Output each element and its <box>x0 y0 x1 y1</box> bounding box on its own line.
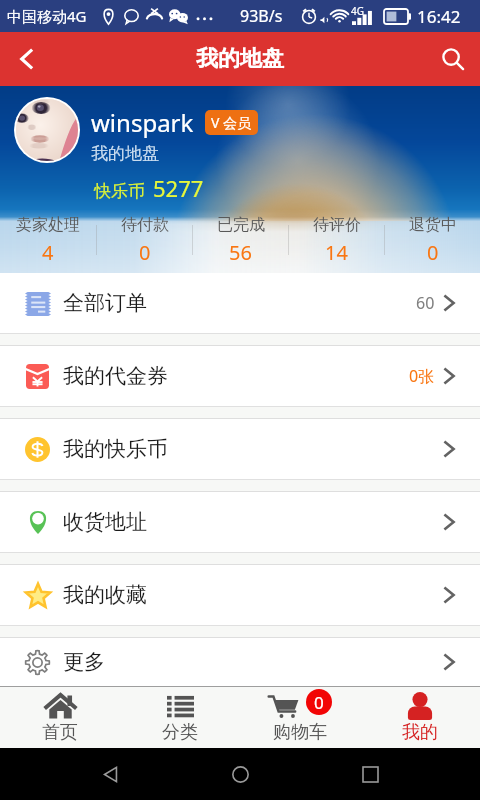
staticText: 分类 <box>162 721 198 744</box>
button[interactable]: 我的收藏 <box>0 565 480 625</box>
staticText: 我的收藏 <box>63 582 147 608</box>
button[interactable]: V 会员 <box>205 110 258 135</box>
staticText: 我的代金券 <box>63 363 168 389</box>
staticText: 4 <box>42 239 54 266</box>
staticText: 56 <box>229 239 252 266</box>
staticText: 快乐币 <box>94 181 145 202</box>
button[interactable]: 我的 <box>360 687 480 748</box>
button[interactable]: 全部订单 <box>0 273 480 333</box>
button[interactable]: 退货中 <box>385 207 480 273</box>
staticText: 更多 <box>63 649 105 675</box>
staticText: 待评价 <box>313 215 361 235</box>
staticText: 购物车 <box>273 721 327 744</box>
button[interactable]: 我的代金券 <box>0 346 480 406</box>
staticText: 中国移动4G <box>7 6 87 26</box>
staticText: 93B/s <box>240 5 283 27</box>
button[interactable]: Profile photo <box>16 99 78 161</box>
staticText: 60 <box>416 292 435 314</box>
staticText: 16:42 <box>417 5 461 28</box>
staticText: V 会员 <box>211 113 252 132</box>
staticText: 卖家处理 <box>16 215 80 235</box>
button[interactable]: 我的快乐币 <box>0 419 480 479</box>
button[interactable]: 待付款 <box>97 207 192 273</box>
button[interactable]: 分类 <box>120 687 240 748</box>
staticText: 0 <box>427 239 439 266</box>
button[interactable]: 收货地址 <box>0 492 480 552</box>
staticText: 14 <box>325 239 348 266</box>
staticText: 收货地址 <box>63 509 147 535</box>
staticText: 0张 <box>409 365 435 387</box>
button[interactable]: 0 <box>240 687 360 748</box>
button[interactable]: 卖家处理 <box>0 207 96 273</box>
button[interactable]: Home <box>220 754 260 794</box>
button[interactable]: Search <box>426 32 480 86</box>
staticText: 4G <box>351 4 364 18</box>
staticText: 退货中 <box>409 215 457 235</box>
staticText: 5277 <box>153 173 204 203</box>
staticText: 已完成 <box>217 215 265 235</box>
staticText: 0 <box>314 691 324 714</box>
staticText: 首页 <box>42 721 78 744</box>
button[interactable]: Recents <box>350 754 390 794</box>
staticText: 我的地盘 <box>196 45 284 73</box>
button[interactable]: 待评价 <box>289 207 384 273</box>
button[interactable]: Back <box>0 32 54 86</box>
staticText: 我的地盘 <box>91 143 159 164</box>
staticText: 全部订单 <box>63 290 147 316</box>
staticText: 我的 <box>402 721 438 744</box>
button[interactable]: Back <box>90 754 130 794</box>
staticText: winspark <box>91 106 194 139</box>
button[interactable]: 首页 <box>0 687 120 748</box>
staticText: 0 <box>139 239 151 266</box>
button[interactable]: 已完成 <box>193 207 288 273</box>
staticText: 待付款 <box>121 215 169 235</box>
staticText: 我的快乐币 <box>63 436 168 462</box>
button[interactable]: 更多 <box>0 638 480 686</box>
